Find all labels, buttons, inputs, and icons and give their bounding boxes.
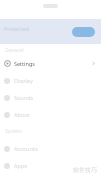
button[interactable]: Settings [0, 55, 101, 72]
button[interactable]: Accounts [0, 140, 101, 157]
staticText: 软件技巧 [73, 166, 97, 174]
staticText: Settings [14, 60, 35, 67]
staticText: Protected [4, 25, 30, 32]
button[interactable]: About [0, 106, 101, 123]
staticText: General [5, 47, 24, 54]
staticText: Sounds [14, 94, 34, 101]
staticText: Accounts [14, 145, 38, 152]
staticText: Apps [14, 162, 27, 169]
button[interactable]: Action [72, 27, 95, 37]
button[interactable]: Sounds [0, 89, 101, 106]
button[interactable]: Display [0, 72, 101, 89]
staticText: Display [14, 77, 33, 84]
button[interactable]: Apps [0, 157, 101, 174]
staticText: About [14, 111, 30, 118]
staticText: System [5, 128, 22, 135]
